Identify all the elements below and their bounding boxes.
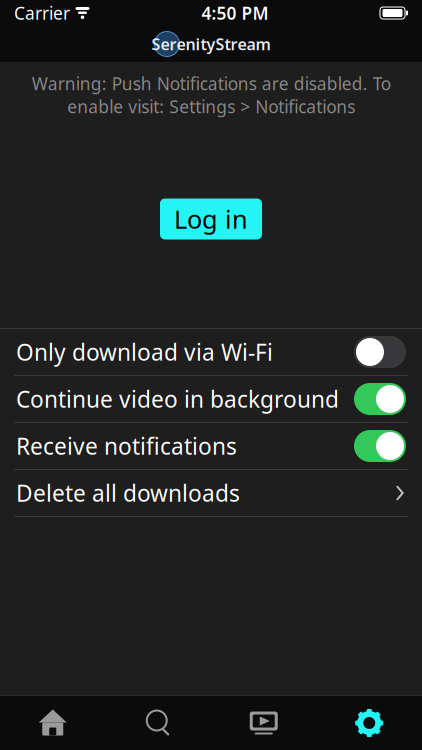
staticText: Warning: Push Notifications are disabled… [31, 72, 390, 118]
button[interactable]: Videos [211, 696, 316, 750]
staticText: Continue video in background [16, 384, 339, 414]
button[interactable]: Home [0, 696, 105, 750]
button[interactable]: Continue video in background [0, 376, 422, 422]
staticText: Log in [174, 202, 248, 236]
staticText: 4:50 PM [201, 1, 268, 24]
button[interactable]: Settings [316, 696, 422, 750]
staticText: Receive notifications [16, 431, 237, 461]
button[interactable]: Receive notifications [0, 423, 422, 469]
staticText: Only download via Wi-Fi [16, 337, 273, 367]
button[interactable]: Only download via Wi-Fi [0, 329, 422, 375]
staticText: Delete all downloads [16, 478, 240, 508]
button[interactable]: Search [105, 696, 211, 750]
staticText: Carrier [14, 1, 70, 24]
button[interactable]: Log in [160, 198, 262, 239]
button[interactable]: Delete all downloads [0, 470, 422, 516]
staticText: SerenityStream [151, 33, 270, 55]
